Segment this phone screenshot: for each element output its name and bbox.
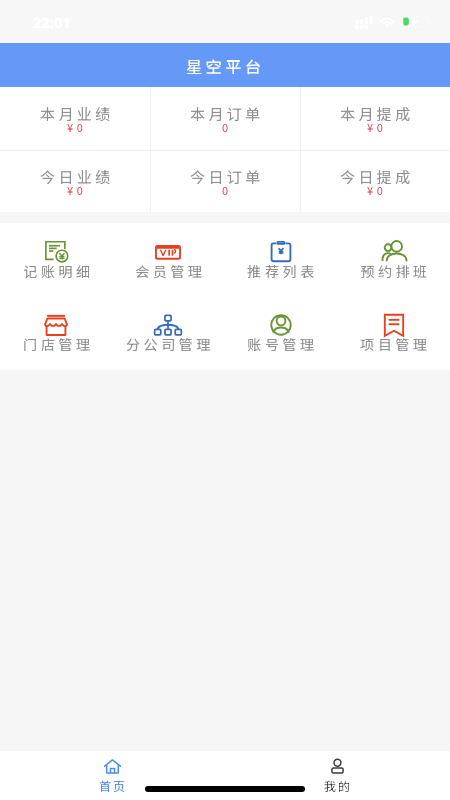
- staticText: 0: [222, 119, 229, 135]
- button[interactable]: 分公司管理: [112, 314, 224, 354]
- staticText: 22:01: [33, 13, 71, 32]
- staticText: ¥ 0: [67, 119, 84, 135]
- button[interactable]: 本月订单: [151, 87, 300, 150]
- button[interactable]: 推荐列表: [224, 241, 337, 281]
- staticText: 本月业绩: [40, 103, 114, 125]
- staticText: 门店管理: [23, 334, 94, 352]
- button[interactable]: 今日订单: [151, 151, 300, 212]
- button[interactable]: 首页: [0, 751, 225, 800]
- staticText: 分公司管理: [126, 334, 214, 352]
- button[interactable]: 今日提成: [301, 151, 450, 212]
- staticText: 会员管理: [135, 261, 206, 279]
- staticText: 0: [222, 182, 229, 198]
- button[interactable]: 门店管理: [0, 314, 112, 354]
- staticText: 推荐列表: [247, 261, 318, 279]
- button[interactable]: 今日业绩: [0, 151, 150, 212]
- button[interactable]: 账号管理: [224, 314, 337, 354]
- button[interactable]: 我的: [225, 751, 450, 800]
- staticText: 项目管理: [360, 334, 431, 352]
- staticText: 记账明细: [23, 261, 94, 279]
- staticText: ¥ 0: [367, 182, 384, 198]
- staticText: 今日订单: [190, 166, 264, 188]
- button[interactable]: 星空平台: [0, 43, 450, 87]
- button[interactable]: 本月业绩: [0, 87, 150, 150]
- button[interactable]: 项目管理: [337, 314, 450, 354]
- button[interactable]: 本月提成: [301, 87, 450, 150]
- button[interactable]: 预约排班: [337, 241, 450, 281]
- staticText: 首页: [99, 777, 128, 794]
- staticText: 本月提成: [340, 103, 414, 125]
- button[interactable]: 记账明细: [0, 241, 112, 281]
- staticText: ¥ 0: [367, 119, 384, 135]
- staticText: 星空平台: [186, 54, 265, 77]
- staticText: 本月订单: [190, 103, 264, 125]
- staticText: 预约排班: [360, 261, 431, 279]
- staticText: 今日提成: [340, 166, 414, 188]
- staticText: 我的: [324, 777, 353, 794]
- staticText: ¥ 0: [67, 182, 84, 198]
- staticText: 今日业绩: [40, 166, 114, 188]
- button[interactable]: 会员管理: [112, 241, 224, 281]
- staticText: 账号管理: [247, 334, 318, 352]
